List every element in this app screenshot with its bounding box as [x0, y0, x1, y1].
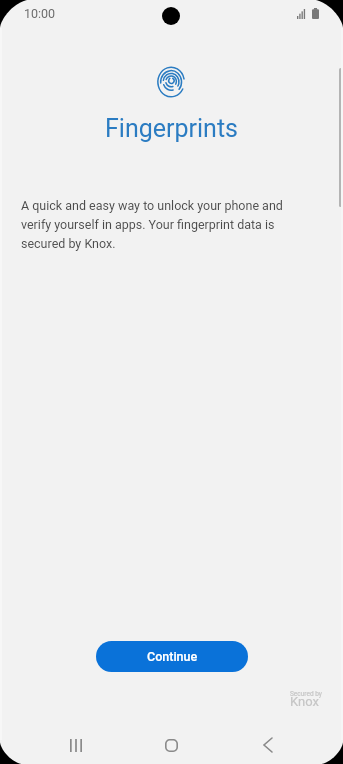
staticText: 10:00	[24, 6, 56, 21]
staticText: Secured by	[290, 690, 322, 698]
button[interactable]: Back	[236, 729, 300, 761]
staticText: Knox	[290, 694, 319, 709]
button[interactable]: Home	[139, 729, 203, 761]
staticText: A quick and easy way to unlock your phon…	[21, 198, 303, 251]
button[interactable]: Recent apps	[44, 729, 108, 761]
button[interactable]: Continue	[96, 641, 248, 672]
staticText: Fingerprints	[0, 114, 343, 143]
staticText: Continue	[147, 649, 198, 664]
